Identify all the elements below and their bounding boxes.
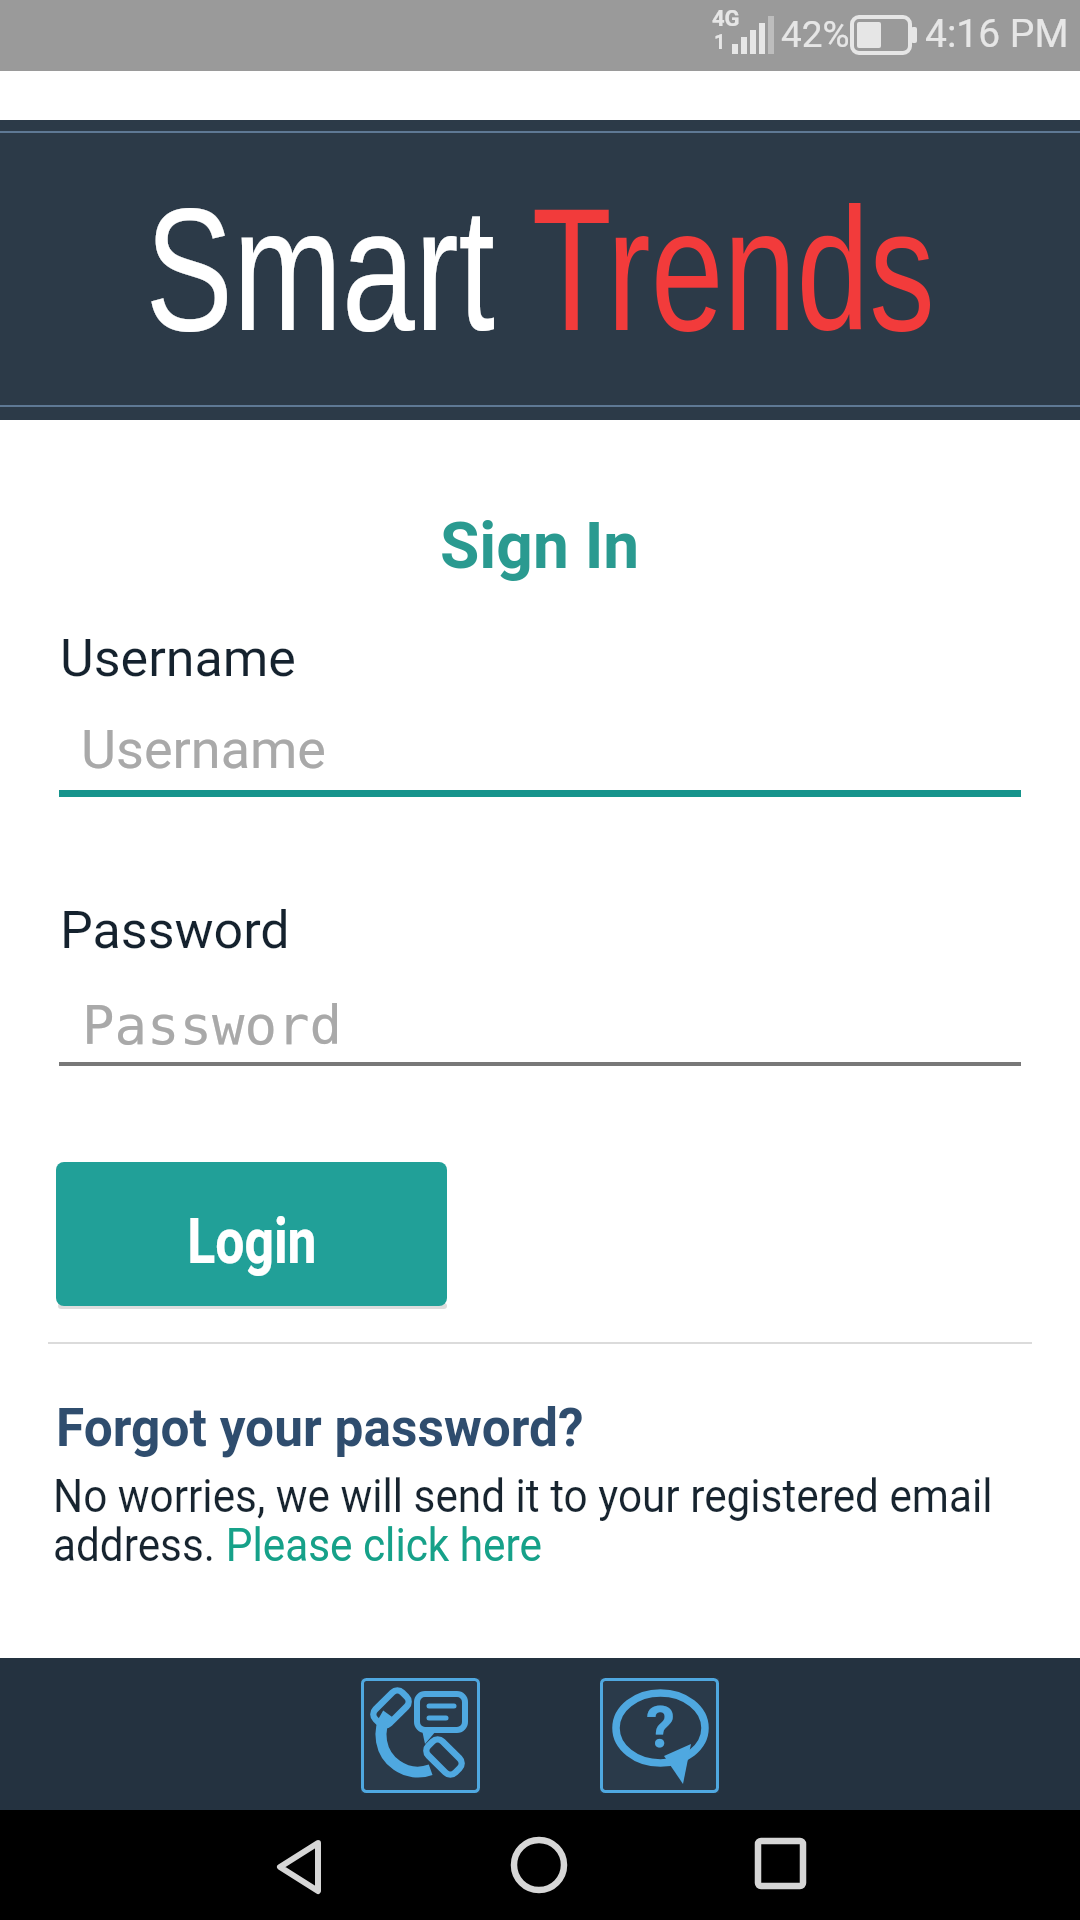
button[interactable] <box>361 1678 480 1793</box>
button[interactable]: ? <box>600 1678 719 1793</box>
button[interactable]: Username <box>59 700 1021 797</box>
staticText: Trends <box>532 172 935 366</box>
staticText: ? <box>646 1693 675 1761</box>
staticText: Password <box>60 900 290 961</box>
staticText: Username <box>81 718 327 781</box>
button[interactable]: Login <box>56 1162 447 1306</box>
staticText: 42% <box>781 13 850 56</box>
button[interactable] <box>755 1839 805 1889</box>
button[interactable]: Please click here <box>226 1517 543 1572</box>
staticText: Forgot your password? <box>56 1397 585 1459</box>
staticText: address. <box>53 1517 226 1572</box>
staticText: 4G <box>712 6 740 32</box>
staticText: Password <box>82 994 343 1057</box>
button[interactable]: Password <box>59 975 1021 1066</box>
staticText: Sign In <box>440 509 640 584</box>
staticText: Smart <box>146 172 532 366</box>
staticText: 4:16 PM <box>925 11 1069 57</box>
button[interactable] <box>274 1841 324 1893</box>
button[interactable] <box>511 1837 567 1893</box>
staticText: No worries, we will send it to your regi… <box>53 1468 993 1523</box>
staticText: 1 <box>714 30 726 53</box>
staticText: Login <box>187 1205 317 1279</box>
staticText: Username <box>60 628 296 689</box>
